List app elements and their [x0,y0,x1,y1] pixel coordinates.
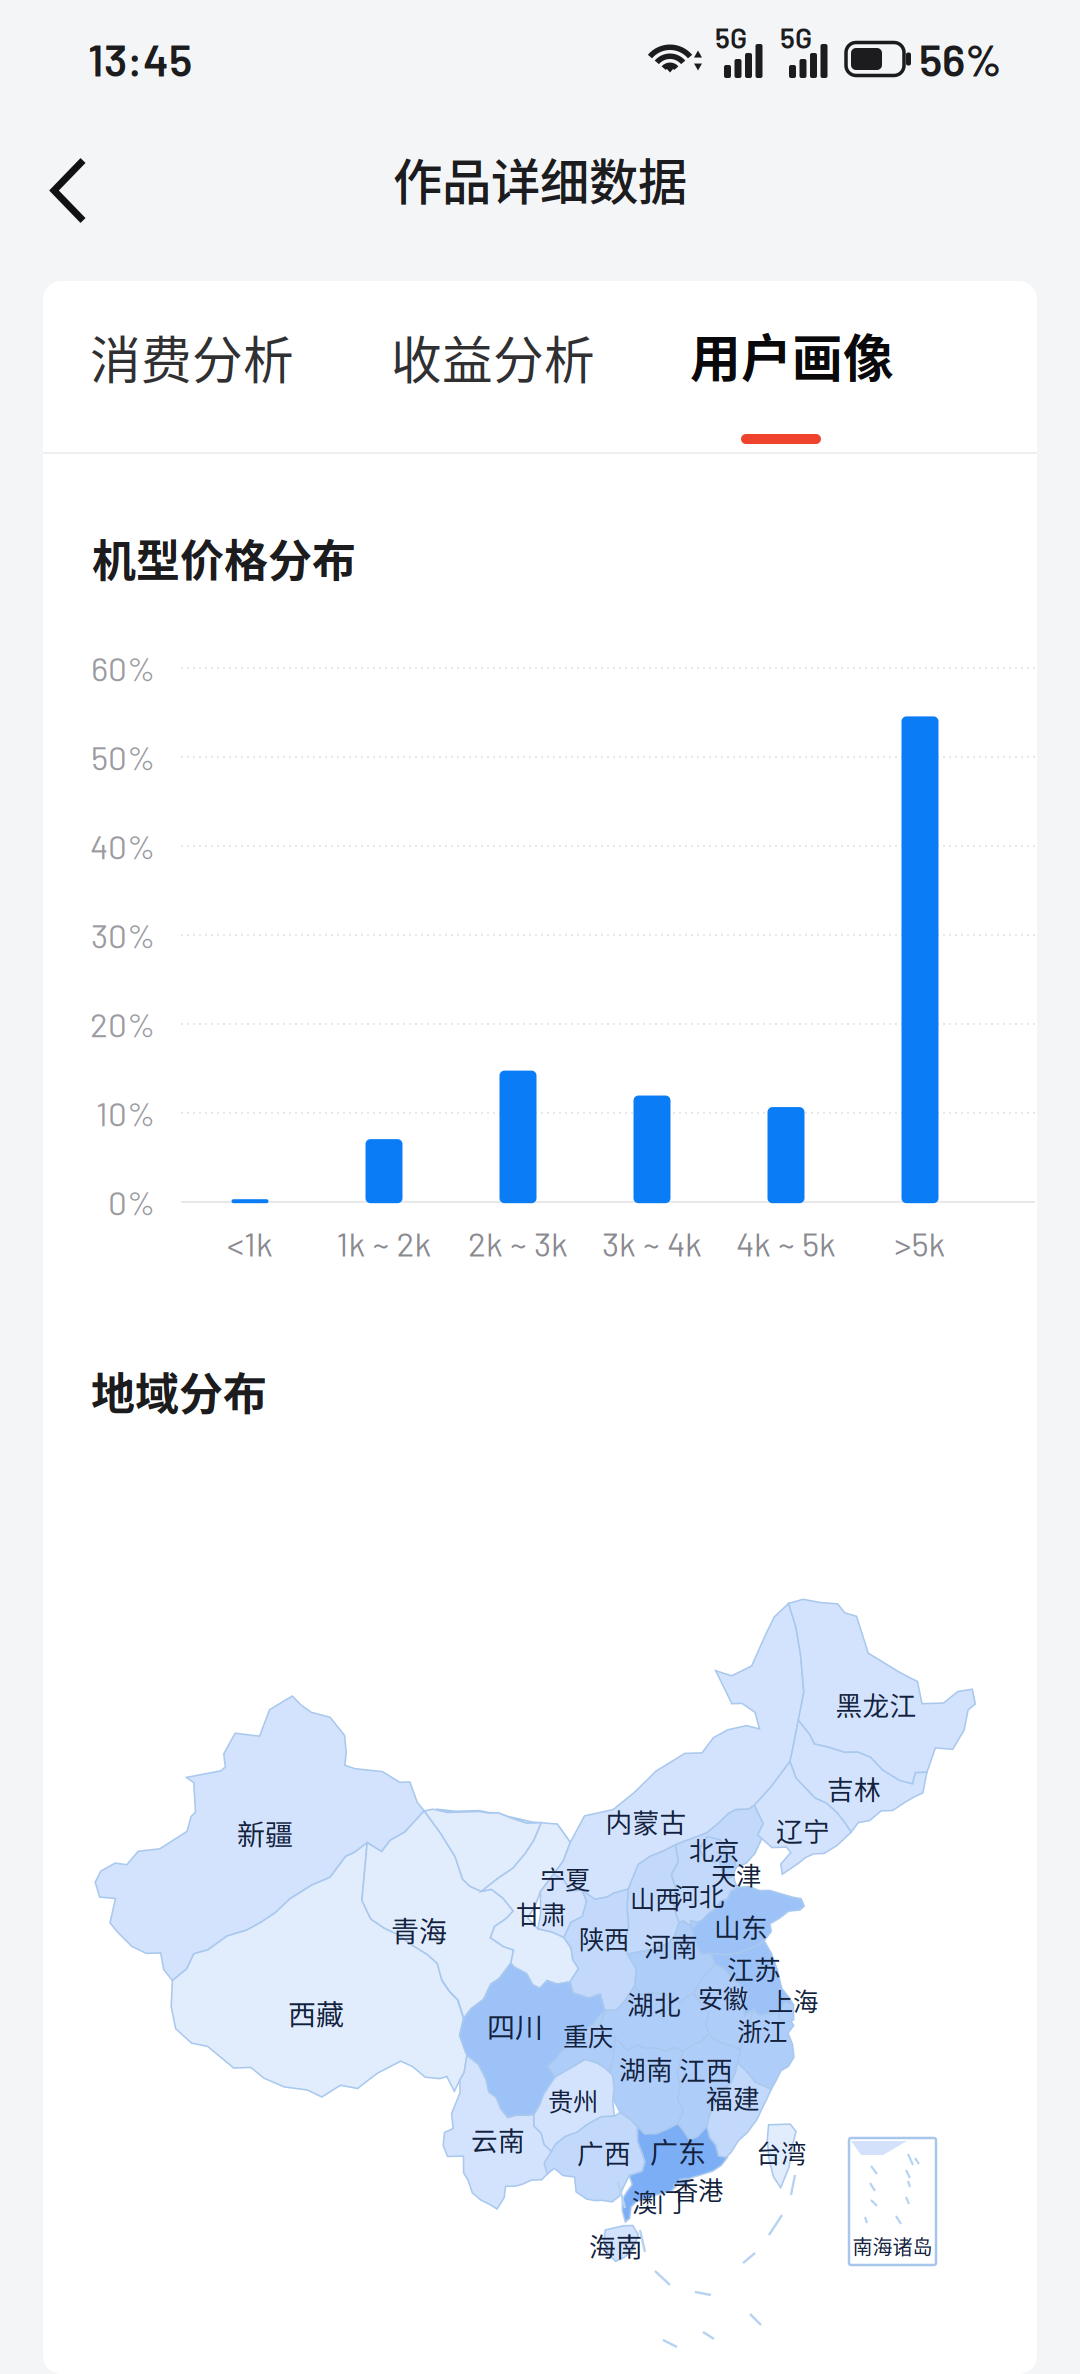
staticText: 南海诸岛 [852,2231,932,2260]
staticText: 陕西 [579,1920,629,1956]
staticText: 云南 [471,2120,525,2158]
staticText: <1k [227,1223,273,1263]
staticText: 台湾 [756,2134,806,2170]
staticText: 吉林 [827,1769,881,1807]
staticText: 新疆 [237,1813,293,1853]
staticText: 西藏 [288,1993,344,2033]
staticText: 0% [108,1182,155,1222]
staticText: 江西 [679,2050,733,2088]
staticText: 20% [90,1004,155,1044]
button[interactable]: 返回 [37,156,133,242]
staticText: 香港 [673,2171,723,2207]
staticText: 机型价格分布 [92,526,356,590]
staticText: 天津 [711,1856,761,1892]
staticText: 5G [780,20,812,54]
staticText: >5k [894,1223,945,1263]
staticText: 60% [91,648,155,688]
staticText: 宁夏 [540,1860,590,1896]
staticText: 56% [919,33,1002,85]
staticText: 北京 [689,1831,739,1867]
staticText: 1k ~ 2k [336,1223,431,1263]
button[interactable]: 收益分析 [394,297,592,417]
staticText: 浙江 [737,2012,787,2048]
staticText: 海南 [589,2226,643,2264]
staticText: 2k ~ 3k [468,1223,568,1263]
staticText: 河南 [644,1926,698,1964]
staticText: 用户画像 [690,318,894,392]
staticText: 辽宁 [776,1811,830,1849]
staticText: 3k ~ 4k [602,1223,702,1263]
staticText: 江苏 [727,1949,781,1987]
staticText: 山西 [630,1880,680,1916]
staticText: 广西 [577,2133,631,2171]
staticText: 13:45 [88,33,192,85]
staticText: 广东 [650,2131,706,2171]
staticText: 安徽 [698,1979,748,2015]
staticText: 澳门 [632,2183,682,2219]
staticText: 收益分析 [391,320,595,394]
staticText: 山东 [714,1907,768,1945]
staticText: 贵州 [548,2082,598,2118]
staticText: 30% [91,915,155,955]
staticText: 5G [715,20,747,54]
staticText: 湖北 [627,1984,681,2022]
staticText: 黑龙江 [835,1685,916,1723]
button[interactable]: 消费分析 [93,297,291,417]
staticText: 作品详细数据 [393,143,687,214]
staticText: 10% [96,1093,155,1133]
staticText: 4k ~ 5k [736,1223,836,1263]
staticText: 甘肃 [516,1895,566,1931]
staticText: 内蒙古 [605,1802,686,1840]
staticText: 上海 [768,1982,818,2018]
staticText: 福建 [706,2078,760,2116]
staticText: 四川 [487,2006,543,2046]
staticText: 40% [90,826,155,866]
staticText: 消费分析 [90,320,294,394]
staticText: 重庆 [563,2017,613,2053]
staticText: 地域分布 [91,1359,267,1423]
staticText: 湖南 [619,2049,673,2087]
button[interactable]: 用户画像 [692,295,892,444]
staticText: 河北 [674,1877,724,1913]
staticText: 50% [91,737,155,777]
staticText: 青海 [391,1910,447,1950]
